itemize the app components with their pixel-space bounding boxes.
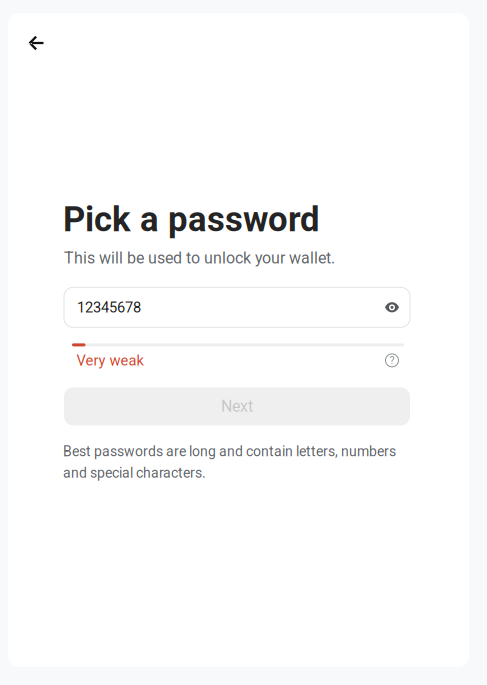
staticText: Best passwords are long and contain lett… bbox=[63, 443, 396, 460]
staticText: 12345678 bbox=[77, 299, 141, 316]
button[interactable]: Next bbox=[64, 387, 410, 425]
staticText: Pick a password bbox=[63, 199, 320, 240]
staticText: Next bbox=[221, 397, 253, 416]
button[interactable]: Show password bbox=[377, 292, 407, 322]
button[interactable]: Back bbox=[17, 24, 55, 62]
button[interactable]: Password strength help bbox=[382, 350, 402, 370]
staticText: ? bbox=[389, 354, 394, 367]
staticText: Very weak bbox=[76, 352, 143, 369]
staticText: This will be used to unlock your wallet. bbox=[64, 249, 335, 267]
staticText: and special characters. bbox=[63, 465, 206, 481]
